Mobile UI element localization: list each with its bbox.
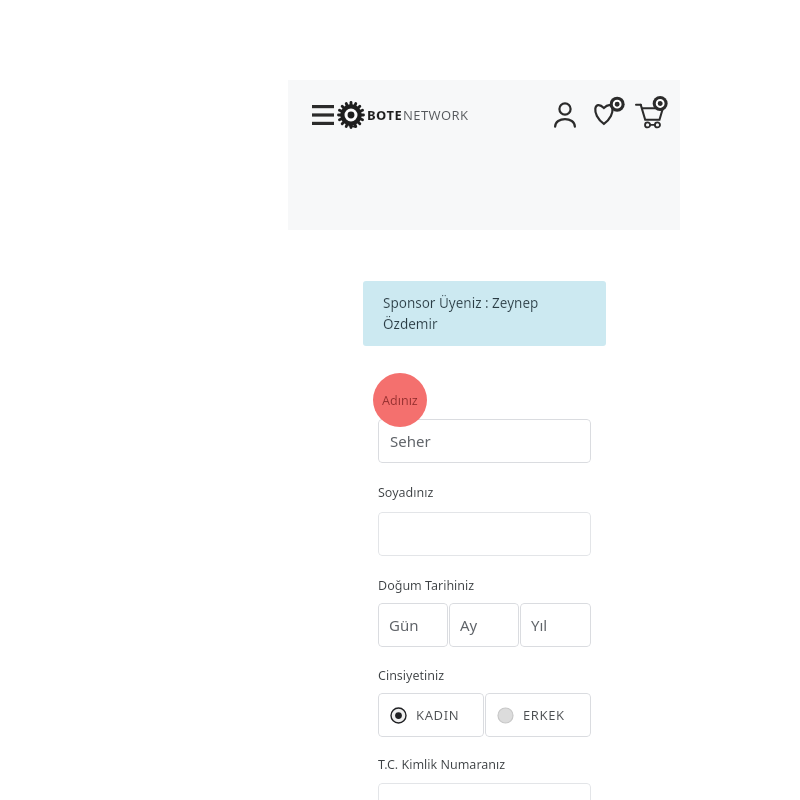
staticText: Ay [460, 615, 478, 635]
staticText: Adınız [378, 391, 414, 408]
button[interactable] [378, 512, 591, 556]
staticText: Doğum Tarihiniz [378, 577, 475, 594]
button[interactable]: Yıl [520, 603, 591, 647]
button[interactable]: Sponsor Üyeniz : Zeynep Özdemir [363, 281, 606, 346]
button[interactable]: Favorites, 0 items [588, 92, 630, 134]
staticText: KADIN [416, 706, 460, 724]
button[interactable]: Account [546, 96, 584, 134]
staticText: ERKEK [523, 706, 565, 724]
button[interactable]: Ay [449, 603, 519, 647]
button[interactable]: Cart, 0 items [631, 92, 673, 134]
button[interactable]: Adınız field hint [373, 373, 427, 427]
button[interactable]: Gün [378, 603, 448, 647]
button[interactable] [378, 783, 591, 800]
staticText: Cinsiyetiniz [378, 667, 445, 684]
staticText: Seher [390, 431, 431, 451]
button[interactable]: Seher [378, 419, 591, 463]
button[interactable]: Menu [305, 97, 341, 133]
staticText: Sponsor Üyeniz : Zeynep Özdemir [383, 294, 594, 333]
staticText: T.C. Kimlik Numaranız [378, 756, 506, 773]
staticText: NETWORK [403, 106, 469, 124]
staticText: Soyadınız [378, 484, 434, 501]
staticText: BOTE [367, 106, 403, 124]
button[interactable]: KADIN [378, 693, 484, 737]
button[interactable]: ERKEK [485, 693, 591, 737]
staticText: Gün [389, 615, 419, 635]
staticText: Yıl [531, 615, 548, 635]
staticText: Adınız [382, 392, 418, 409]
button[interactable]: BOTE [338, 100, 469, 130]
